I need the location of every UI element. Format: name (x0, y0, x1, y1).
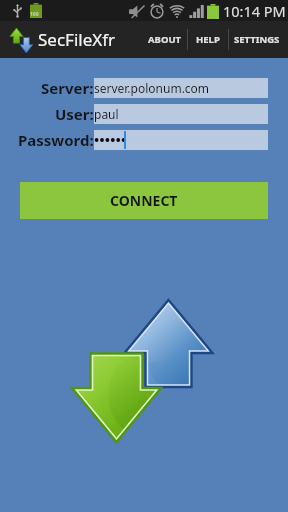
staticText: 100% (30, 11, 42, 18)
button[interactable] (94, 130, 268, 150)
staticText: paul (94, 106, 119, 122)
button[interactable]: paul (94, 104, 268, 124)
staticText: HELP (196, 33, 220, 46)
staticText: SETTINGS (234, 33, 280, 46)
staticText: SecFileXfr (38, 28, 116, 51)
staticText: CONNECT (110, 191, 178, 210)
staticText: ABOUT (148, 33, 182, 46)
button[interactable]: CONNECT (20, 182, 268, 219)
staticText: 10:14 PM (223, 1, 286, 21)
button[interactable]: HELP (188, 21, 228, 58)
button[interactable]: SETTINGS (229, 21, 284, 58)
button[interactable]: server.polonum.com (94, 78, 268, 98)
staticText: User: (55, 104, 94, 124)
button[interactable]: ABOUT (142, 21, 187, 58)
staticText: Server: (41, 78, 94, 98)
staticText: Password: (18, 130, 94, 150)
staticText: server.polonum.com (94, 80, 210, 96)
